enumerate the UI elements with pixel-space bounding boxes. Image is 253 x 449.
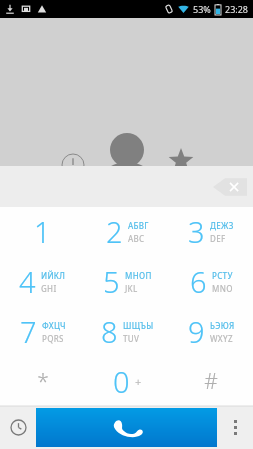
button[interactable]: 0 — [85, 356, 169, 406]
button[interactable]: 8 — [85, 306, 169, 356]
staticText: 23:28 — [225, 3, 249, 15]
staticText: АБВГ — [128, 220, 149, 231]
staticText: РСТУ — [212, 270, 233, 281]
staticText: 9 — [188, 312, 205, 351]
staticText: ЬЭЮЯ — [210, 320, 235, 331]
staticText: ABC — [128, 233, 145, 244]
staticText: 5 — [103, 262, 120, 301]
button[interactable]: 9 — [169, 306, 253, 356]
staticText: 3 — [188, 212, 205, 251]
button[interactable]: * — [0, 356, 85, 406]
staticText: JKL — [125, 283, 138, 294]
button[interactable]: Backspace — [213, 175, 247, 199]
staticText: 4 — [19, 262, 36, 301]
staticText: 1 — [34, 212, 51, 251]
staticText: МНОП — [125, 270, 152, 281]
button[interactable]: 6 — [169, 256, 253, 306]
button[interactable]: 4 — [0, 256, 85, 306]
button[interactable]: Recent calls — [0, 406, 36, 449]
staticText: 7 — [20, 312, 37, 351]
staticText: WXYZ — [210, 333, 233, 344]
staticText: ИЙКЛ — [41, 270, 66, 281]
button[interactable]: Call — [36, 408, 217, 447]
staticText: + — [135, 374, 142, 389]
button[interactable]: 7 — [0, 306, 85, 356]
button[interactable]: 1 — [0, 207, 85, 256]
staticText: 53% — [193, 3, 211, 15]
staticText: DEF — [210, 233, 226, 244]
staticText: ФХЦЧ — [42, 320, 66, 331]
staticText: * — [37, 367, 49, 396]
button[interactable]: 5 — [85, 256, 169, 306]
staticText: ДЕЖЗ — [210, 220, 234, 231]
button[interactable]: 2 — [85, 207, 169, 256]
staticText: GHI — [41, 283, 57, 294]
button[interactable]: 3 — [169, 207, 253, 256]
staticText: TUV — [123, 333, 140, 344]
staticText: PQRS — [42, 333, 64, 344]
staticText: 0 — [113, 362, 130, 401]
button[interactable]: # — [169, 356, 253, 406]
staticText: 8 — [101, 312, 118, 351]
button[interactable]: More options — [217, 406, 253, 449]
staticText: 6 — [190, 262, 207, 301]
staticText: MNO — [212, 283, 233, 294]
staticText: ШЩЪЫ — [123, 320, 154, 331]
staticText: 2 — [106, 212, 123, 251]
staticText: # — [204, 367, 218, 396]
